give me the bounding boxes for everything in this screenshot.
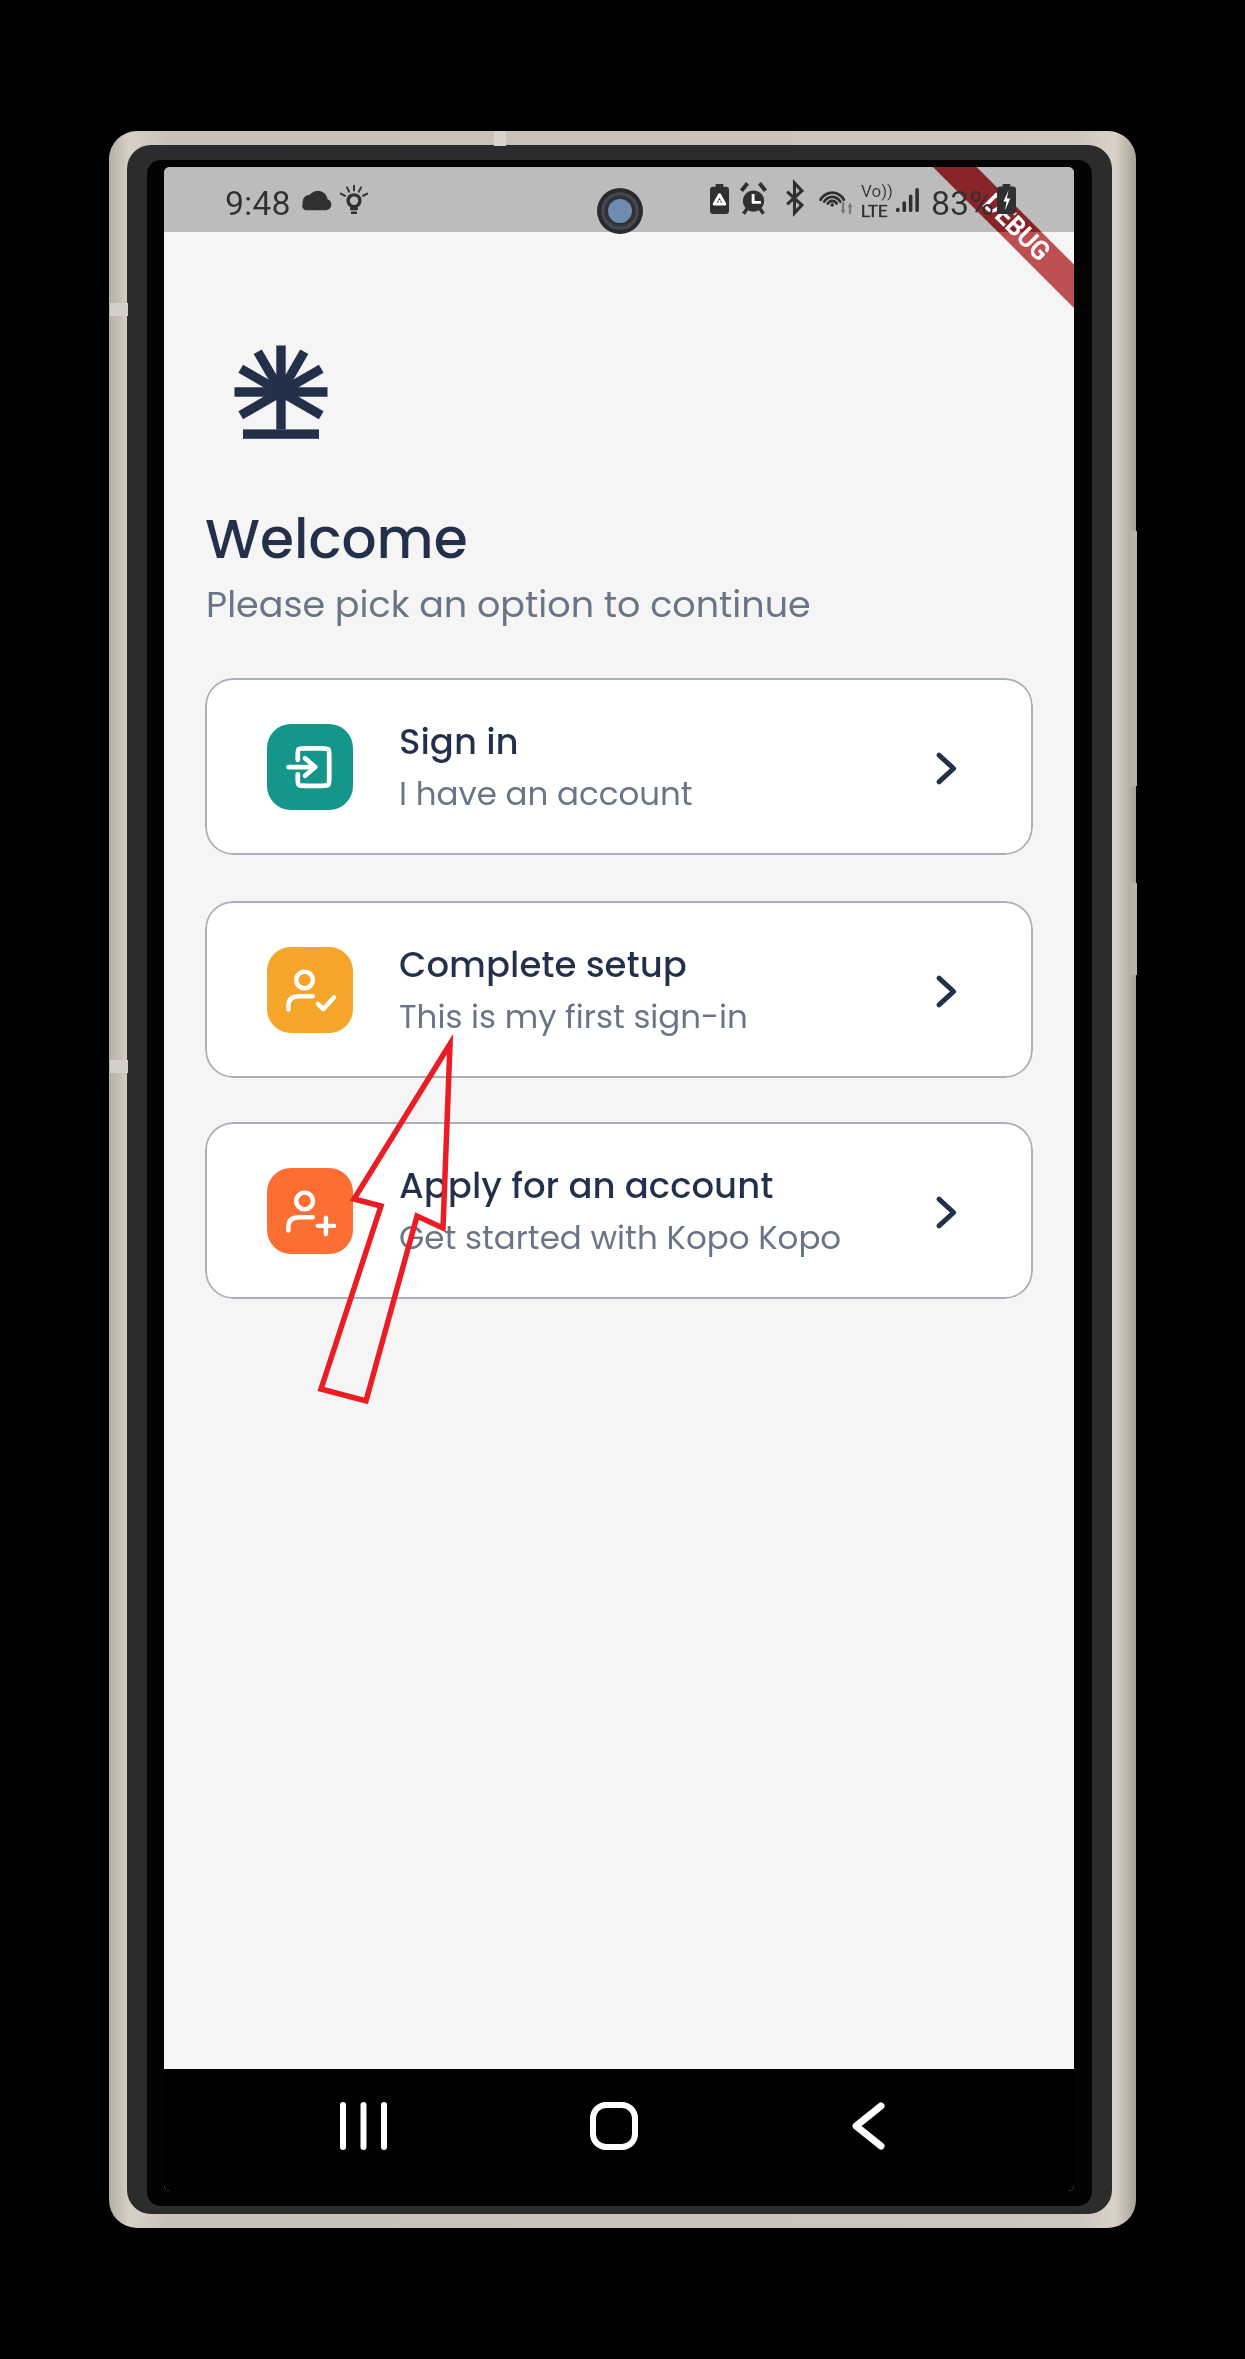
staticText: Please pick an option to continue bbox=[206, 579, 811, 630]
button[interactable]: Home bbox=[574, 2086, 654, 2166]
button[interactable]: Sign in bbox=[205, 678, 1033, 855]
staticText: Get started with Kopo Kopo bbox=[399, 1215, 842, 1261]
button[interactable]: Recent apps bbox=[323, 2086, 403, 2166]
staticText: LTE bbox=[861, 201, 888, 221]
staticText: I have an account bbox=[399, 771, 693, 817]
staticText: DEBUG bbox=[978, 188, 1056, 267]
staticText: Vo)) bbox=[861, 181, 893, 201]
button[interactable]: Complete setup bbox=[205, 901, 1033, 1078]
staticText: Welcome bbox=[205, 500, 468, 577]
staticText: Complete setup bbox=[399, 940, 687, 990]
button[interactable]: Apply for an account bbox=[205, 1122, 1033, 1299]
staticText: This is my first sign-in bbox=[399, 994, 748, 1040]
staticText: Apply for an account bbox=[399, 1161, 774, 1211]
staticText: 83% bbox=[931, 183, 995, 223]
staticText: 9:48 bbox=[225, 183, 291, 223]
button[interactable]: Back bbox=[828, 2086, 908, 2166]
staticText: Sign in bbox=[399, 717, 519, 767]
